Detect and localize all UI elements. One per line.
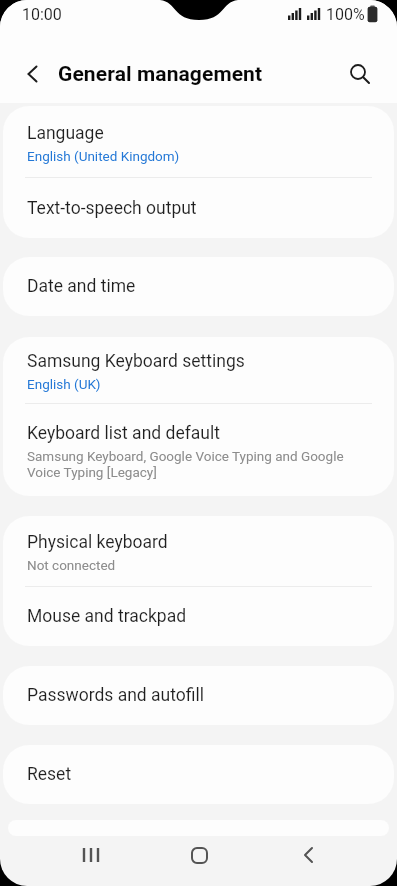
staticText: Samsung Keyboard settings bbox=[27, 351, 245, 372]
staticText: Not connected bbox=[27, 557, 116, 573]
staticText: English (UK) bbox=[27, 376, 101, 392]
staticText: Mouse and trackpad bbox=[27, 606, 187, 627]
staticText: 10:00 bbox=[22, 5, 62, 24]
staticText: Date and time bbox=[27, 276, 136, 297]
staticText: Physical keyboard bbox=[27, 532, 168, 553]
staticText: Reset bbox=[27, 764, 72, 785]
staticText: Keyboard list and default bbox=[27, 423, 220, 444]
button[interactable]: Keyboard list and default bbox=[3, 404, 394, 496]
staticText: 100% bbox=[326, 5, 365, 24]
button[interactable] bbox=[181, 837, 217, 873]
button[interactable]: Passwords and autofill bbox=[3, 666, 394, 725]
button[interactable] bbox=[9, 50, 57, 98]
staticText: Passwords and autofill bbox=[27, 685, 204, 706]
button[interactable]: Physical keyboard bbox=[3, 516, 394, 586]
staticText: Language bbox=[27, 123, 104, 144]
staticText: Text-to-speech output bbox=[27, 198, 197, 219]
button[interactable]: Mouse and trackpad bbox=[3, 587, 394, 646]
button[interactable]: Reset bbox=[3, 745, 394, 804]
staticText: General management bbox=[58, 62, 263, 87]
button[interactable]: Samsung Keyboard settings bbox=[3, 337, 394, 403]
button[interactable] bbox=[336, 50, 384, 98]
staticText: English (United Kingdom) bbox=[27, 148, 180, 164]
button[interactable]: Date and time bbox=[3, 257, 394, 316]
button[interactable]: Language bbox=[3, 106, 394, 177]
staticText: Samsung Keyboard, Google Voice Typing an… bbox=[27, 448, 344, 480]
button[interactable] bbox=[73, 837, 109, 873]
button[interactable] bbox=[291, 837, 327, 873]
button[interactable]: Text-to-speech output bbox=[3, 178, 394, 238]
